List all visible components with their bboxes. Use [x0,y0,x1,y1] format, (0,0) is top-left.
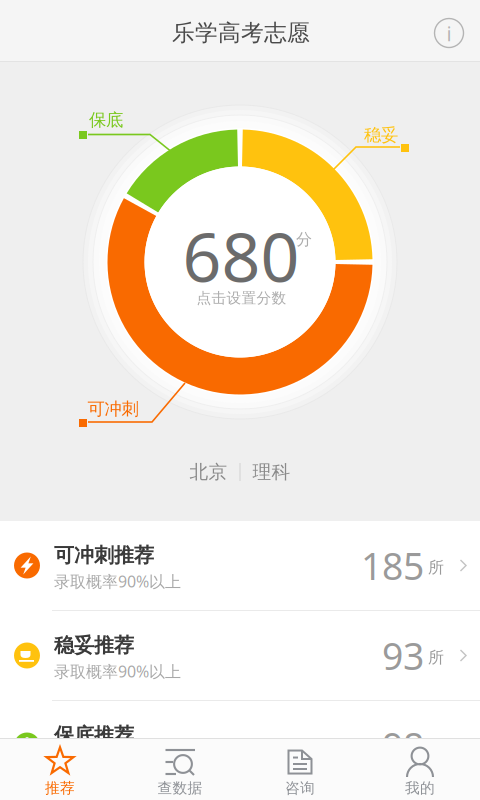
staticText: 分 [296,230,312,249]
button[interactable]: 可冲刺推荐 [0,521,480,610]
button[interactable]: 我的 [360,738,480,800]
staticText: 185 [361,541,424,590]
staticText: 咨询 [285,779,315,797]
button[interactable]: 北京 [0,450,480,494]
staticText: 稳妥 [364,124,398,146]
staticText: 北京 [189,460,227,483]
staticText: 乐学高考志愿 [172,19,310,47]
button[interactable]: 查数据 [120,738,240,800]
button[interactable]: 保底推荐 [0,701,480,790]
staticText: 93 [382,631,424,680]
button[interactable]: 稳妥推荐 [0,611,480,700]
staticText: 录取概率90%以上 [54,571,181,592]
staticText: 录取概率90%以上 [54,661,181,682]
staticText: 我的 [405,779,435,797]
staticText: 所 [428,648,444,667]
staticText: i [446,20,451,47]
button[interactable]: 咨询 [240,738,360,800]
staticText: 点击设置分数 [196,289,286,307]
staticText: 680 [182,210,299,301]
staticText: 录取概率90%以上 [54,751,181,772]
staticText: 所 [428,738,444,757]
staticText: 可冲刺 [87,398,138,420]
button[interactable]: 推荐 [0,738,120,800]
staticText: 98 [382,721,424,770]
staticText: 保底 [89,109,123,131]
staticText: 所 [428,558,444,577]
staticText: 保底推荐 [54,723,134,748]
staticText: 稳妥推荐 [54,633,134,658]
button[interactable]: 说明 [426,10,472,56]
staticText: 理科 [252,460,290,483]
staticText: 可冲刺推荐 [54,543,154,568]
staticText: 推荐 [45,779,75,797]
button[interactable]: 设置分数 [0,0,480,800]
staticText: 查数据 [157,779,202,797]
